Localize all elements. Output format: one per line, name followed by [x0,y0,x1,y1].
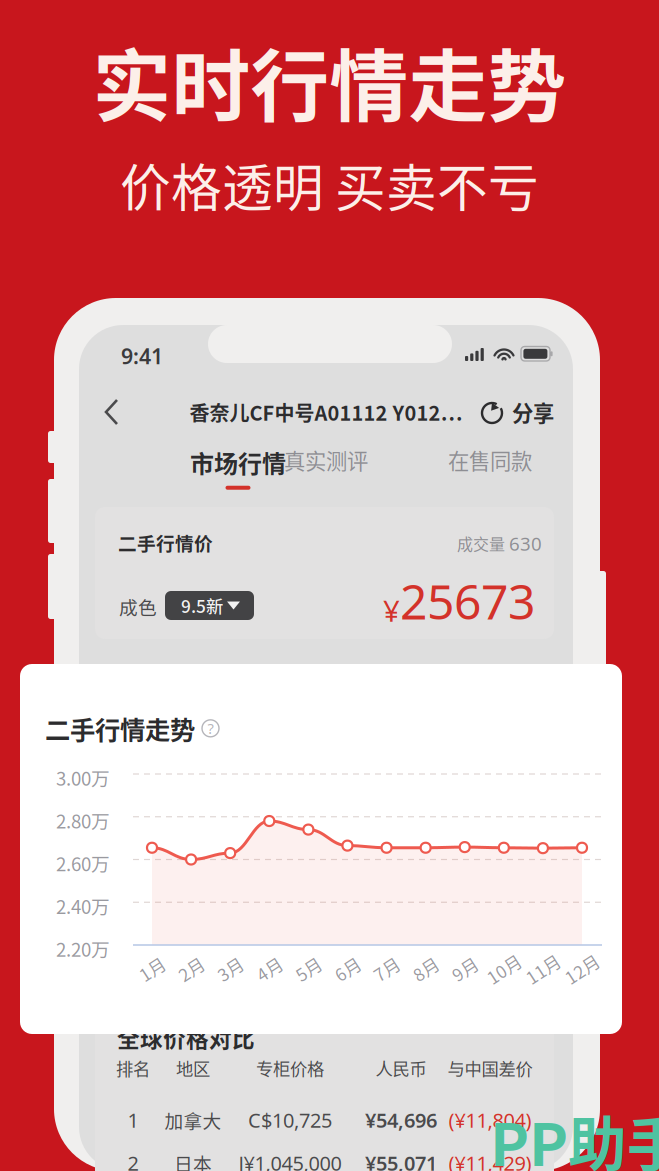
staticText: PP助手 [490,1098,659,1171]
staticText: 2月 [178,956,205,982]
staticText: 6月 [334,956,361,982]
staticText: 真实测评 [284,445,368,475]
staticText: 2.80万 [56,807,110,834]
staticText: 5月 [295,956,322,982]
staticText: 2.20万 [56,935,110,962]
button[interactable]: 分享 [481,391,554,433]
staticText: 人民币 [375,1055,426,1081]
staticText: 9.5新 [181,593,223,618]
staticText: 630 [509,531,542,556]
staticText: J¥1,045,000 [238,1150,341,1171]
staticText: 8月 [412,956,439,982]
staticText: 25673 [400,569,535,633]
staticText: 地区 [176,1055,210,1081]
staticText: ? [207,719,213,738]
staticText: 专柜价格 [256,1055,324,1081]
staticText: ¥55,071 [365,1150,437,1171]
staticText: 9:41 [121,342,163,370]
staticText: 4月 [256,956,283,982]
staticText: 全球价格对比 [117,1021,255,1054]
staticText: 二手行情走势 [45,710,195,747]
staticText: ¥ [383,591,400,630]
staticText: 12月 [563,956,600,982]
button[interactable]: 在售同款 [415,445,565,475]
staticText: 成色 [119,593,157,620]
staticText: 2.60万 [56,849,110,876]
button[interactable]: 返回 [91,389,133,435]
staticText: 7月 [373,956,400,982]
button[interactable]: 真实测评 [251,445,401,475]
staticText: (¥11,804) [448,1107,531,1133]
staticText: 二手行情价 [118,529,213,556]
staticText: 香奈儿CF中号A01112 Y012… [189,397,462,426]
staticText: 10月 [485,956,522,982]
staticText: 2 [127,1150,138,1171]
staticText: 1月 [138,956,165,982]
staticText: 分享 [512,397,554,427]
staticText: 成交量 [457,532,505,555]
staticText: 1 [127,1107,138,1133]
staticText: 实时行情走势 [92,24,566,138]
staticText: (¥11,429) [448,1150,531,1171]
button[interactable]: 市场行情 [163,445,313,497]
staticText: 排名 [116,1055,150,1081]
staticText: 日本 [174,1149,212,1171]
staticText: 2.40万 [56,892,110,919]
staticText: ¥54,696 [365,1107,437,1133]
staticText: 在售同款 [448,445,532,475]
staticText: 3月 [217,956,244,982]
staticText: 市场行情 [190,445,286,480]
staticText: 11月 [524,956,561,982]
staticText: 与中国差价 [447,1055,532,1081]
staticText: C$10,725 [248,1107,332,1133]
staticText: 价格透明 买卖不亏 [120,148,539,221]
staticText: 加拿大 [164,1106,221,1133]
staticText: 3.00万 [56,764,110,791]
staticText: 9月 [451,956,478,982]
